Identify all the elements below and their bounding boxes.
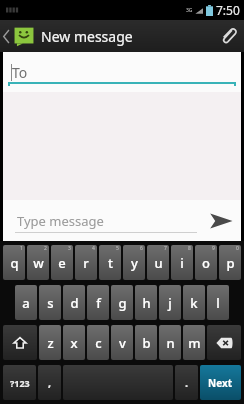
staticText: t xyxy=(108,254,113,272)
staticText: Type message xyxy=(17,212,104,230)
button[interactable]: b xyxy=(135,325,157,360)
button[interactable]: To xyxy=(3,52,241,92)
button[interactable]: Send xyxy=(201,201,241,241)
button[interactable]: 2 xyxy=(27,245,49,280)
staticText: i xyxy=(180,254,184,272)
staticText: q xyxy=(10,254,19,272)
button[interactable]: Attach xyxy=(212,20,244,52)
button[interactable]: m xyxy=(183,325,205,360)
staticText: x xyxy=(70,334,78,352)
staticText: s xyxy=(47,294,54,312)
button[interactable]: Delete xyxy=(207,325,241,360)
staticText: o xyxy=(202,254,210,272)
staticText: f xyxy=(96,294,101,312)
button[interactable]: v xyxy=(111,325,133,360)
staticText: 0 xyxy=(236,245,239,252)
button[interactable]: z xyxy=(39,325,61,360)
staticText: h xyxy=(142,294,151,312)
button[interactable]: f xyxy=(87,285,109,320)
button[interactable]: j xyxy=(159,285,181,320)
staticText: ?123 xyxy=(10,377,30,389)
staticText: v xyxy=(119,334,126,352)
staticText: Next xyxy=(208,376,233,390)
button[interactable]: n xyxy=(159,325,181,360)
staticText: , xyxy=(48,375,52,390)
button[interactable]: a xyxy=(15,285,37,320)
staticText: z xyxy=(47,334,54,352)
button[interactable]: Type message xyxy=(3,200,201,241)
staticText: . xyxy=(185,375,189,390)
button[interactable]: 0 xyxy=(219,245,241,280)
staticText: 2 xyxy=(44,245,47,252)
button[interactable]: 9 xyxy=(195,245,217,280)
button[interactable]: , xyxy=(38,365,61,400)
button[interactable]: 1 xyxy=(3,245,25,280)
staticText: a xyxy=(22,294,30,312)
button[interactable]: 8 xyxy=(171,245,193,280)
button[interactable]: x xyxy=(63,325,85,360)
button[interactable]: 4 xyxy=(75,245,97,280)
button[interactable]: c xyxy=(87,325,109,360)
staticText: e xyxy=(58,254,66,272)
button[interactable]: Next xyxy=(200,365,241,400)
staticText: 5 xyxy=(116,245,119,252)
staticText: 1 xyxy=(20,245,23,252)
button[interactable]: 7 xyxy=(147,245,169,280)
staticText: b xyxy=(142,334,151,352)
staticText: l xyxy=(216,294,220,312)
staticText: 7 xyxy=(164,245,167,252)
button[interactable]: g xyxy=(111,285,133,320)
staticText: To xyxy=(12,63,28,82)
staticText: 3 xyxy=(68,245,71,252)
button[interactable]: Shift xyxy=(3,325,37,360)
staticText: w xyxy=(33,254,44,272)
staticText: 9 xyxy=(212,245,215,252)
other: Back xyxy=(3,30,10,43)
staticText: 7:50 xyxy=(216,2,240,18)
staticText: k xyxy=(190,294,198,312)
button[interactable]: 6 xyxy=(123,245,145,280)
staticText: 8 xyxy=(188,245,191,252)
staticText: m xyxy=(188,334,201,352)
staticText: n xyxy=(166,334,175,352)
staticText: y xyxy=(131,254,138,272)
button[interactable]: s xyxy=(39,285,61,320)
staticText: g xyxy=(118,294,127,312)
staticText: 4 xyxy=(92,245,95,252)
staticText: New message xyxy=(41,27,133,46)
button[interactable]: 3 xyxy=(51,245,73,280)
button[interactable]: k xyxy=(183,285,205,320)
button[interactable]: . xyxy=(175,365,198,400)
staticText: 3G xyxy=(186,7,193,14)
staticText: r xyxy=(83,254,89,272)
button[interactable]: l xyxy=(207,285,229,320)
staticText: j xyxy=(168,294,172,312)
staticText: p xyxy=(226,254,235,272)
button[interactable] xyxy=(63,365,173,400)
staticText: d xyxy=(70,294,79,312)
button[interactable]: d xyxy=(63,285,85,320)
button[interactable]: ?123 xyxy=(3,365,36,400)
staticText: c xyxy=(95,334,102,352)
staticText: u xyxy=(154,254,163,272)
button[interactable]: Back xyxy=(0,25,133,47)
button[interactable]: 5 xyxy=(99,245,121,280)
button[interactable]: h xyxy=(135,285,157,320)
staticText: 6 xyxy=(140,245,143,252)
